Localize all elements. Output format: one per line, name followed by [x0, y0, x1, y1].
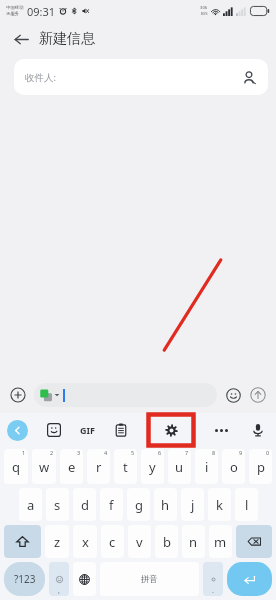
staticText: u [175, 458, 184, 476]
staticText: 无服务 [6, 11, 20, 17]
button[interactable]: Change language [73, 562, 96, 596]
button[interactable]: Voice input [247, 419, 269, 441]
staticText: q [12, 458, 20, 476]
button[interactable]: Emoji [222, 384, 244, 406]
button[interactable]: Back [8, 26, 34, 52]
button[interactable]: d [73, 488, 96, 521]
staticText: v [136, 533, 143, 551]
staticText: 拼音 [141, 574, 158, 585]
staticText: , [58, 586, 60, 596]
staticText: 0 [266, 449, 270, 456]
button[interactable]: q [4, 449, 28, 484]
button[interactable]: y [141, 449, 164, 484]
staticText: t [123, 458, 128, 476]
staticText: 2 [50, 449, 54, 456]
button[interactable]: s [46, 488, 69, 521]
staticText: 中国移动 [6, 5, 24, 11]
button[interactable] [34, 383, 217, 407]
button[interactable]: GIF [80, 419, 95, 441]
staticText: 9 [239, 449, 243, 456]
staticText: f [109, 496, 114, 514]
staticText: 7 [185, 449, 189, 456]
button[interactable]: j [181, 488, 204, 521]
staticText: 09:31 [27, 4, 56, 19]
staticText: B/S [201, 11, 208, 17]
staticText: e [68, 458, 76, 476]
button[interactable]: r [87, 449, 110, 484]
button[interactable]: b [155, 525, 178, 558]
button[interactable]: g [127, 488, 150, 521]
button[interactable]: Period [203, 562, 223, 596]
staticText: 1 [22, 449, 26, 456]
button[interactable]: p [249, 449, 272, 484]
staticText: 收件人: [25, 71, 57, 84]
button[interactable]: w [32, 449, 56, 484]
button[interactable]: Clipboard [110, 419, 132, 441]
button[interactable]: h [154, 488, 177, 521]
button[interactable]: t [114, 449, 137, 484]
button[interactable]: Attach [7, 384, 29, 406]
button[interactable]: ?123 [4, 562, 45, 596]
button[interactable]: e [60, 449, 83, 484]
staticText: 3 [77, 449, 81, 456]
staticText: 8 [212, 449, 216, 456]
staticText: 6 [158, 449, 162, 456]
button[interactable]: l [235, 488, 258, 521]
staticText: x [82, 533, 89, 551]
button[interactable]: f [100, 488, 123, 521]
staticText: c [109, 533, 116, 551]
button[interactable]: Shift [4, 525, 41, 558]
staticText: b [163, 533, 171, 551]
button[interactable]: More [210, 419, 232, 441]
button[interactable]: k [208, 488, 231, 521]
staticText: g [135, 496, 143, 514]
staticText: w [39, 458, 50, 476]
staticText: p [257, 458, 265, 476]
button[interactable]: n [182, 525, 205, 558]
button[interactable]: Backspace [236, 525, 272, 558]
staticText: n [189, 533, 198, 551]
staticText: . [212, 586, 214, 596]
button[interactable]: i [195, 449, 218, 484]
button[interactable]: u [168, 449, 191, 484]
button[interactable]: Emoji and comma [49, 562, 69, 596]
staticText: o [230, 458, 238, 476]
staticText: a [27, 496, 35, 514]
staticText: d [81, 496, 89, 514]
button[interactable]: 收件人: [14, 59, 268, 95]
button[interactable]: x [73, 525, 97, 558]
staticText: 新建信息 [39, 30, 95, 48]
staticText: 5 [131, 449, 135, 456]
staticText: y [149, 458, 156, 476]
button[interactable]: Sticker [43, 419, 65, 441]
staticText: h [161, 496, 170, 514]
staticText: k [216, 496, 223, 514]
button[interactable]: Pick contact [238, 66, 260, 88]
button[interactable]: a [19, 488, 42, 521]
staticText: l [245, 496, 249, 514]
button[interactable]: m [209, 525, 232, 558]
staticText: z [54, 533, 61, 551]
button[interactable]: v [128, 525, 151, 558]
button[interactable]: Collapse keyboard [7, 420, 28, 441]
staticText: m [214, 533, 227, 551]
staticText: 4 [104, 449, 108, 456]
staticText: 306 [200, 5, 208, 11]
button[interactable]: Keyboard settings [147, 413, 195, 447]
button[interactable]: 拼音 [100, 562, 199, 596]
button[interactable]: Enter [227, 562, 272, 596]
button[interactable]: o [222, 449, 245, 484]
button[interactable]: c [101, 525, 124, 558]
staticText: j [191, 496, 195, 514]
staticText: i [205, 458, 209, 476]
staticText: ?123 [14, 572, 36, 586]
button[interactable]: z [45, 525, 69, 558]
staticText: GIF [80, 424, 95, 436]
staticText: s [54, 496, 61, 514]
button[interactable]: Send [247, 384, 269, 406]
staticText: r [96, 458, 102, 476]
